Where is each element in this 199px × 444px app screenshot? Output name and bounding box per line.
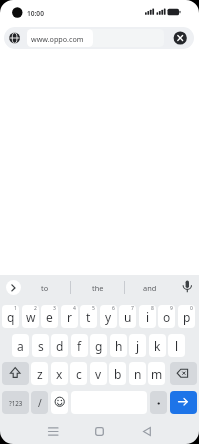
staticText: 5	[92, 305, 95, 312]
button[interactable]: j	[129, 334, 146, 357]
staticText: j	[136, 338, 140, 354]
staticText: n	[134, 366, 142, 382]
staticText: y	[105, 309, 112, 325]
staticText: b	[114, 366, 122, 382]
button[interactable]: v	[90, 362, 107, 385]
staticText: k	[154, 338, 161, 354]
button[interactable]: l	[168, 334, 185, 357]
staticText: u	[124, 309, 132, 325]
button[interactable]: m	[148, 362, 165, 385]
staticText: v	[95, 366, 102, 382]
staticText: t	[86, 309, 91, 325]
button[interactable]: to	[32, 279, 58, 296]
button[interactable]: p	[178, 305, 195, 328]
staticText: z	[37, 366, 43, 382]
button[interactable]: o	[158, 305, 175, 328]
button[interactable]: h	[110, 334, 127, 357]
button[interactable]: w	[22, 305, 39, 328]
button[interactable]: r	[61, 305, 78, 328]
staticText: 10:00	[27, 9, 44, 18]
staticText: m	[151, 366, 163, 382]
staticText: f	[77, 338, 82, 354]
button[interactable]: k	[149, 334, 166, 357]
staticText: d	[56, 338, 64, 354]
button[interactable]: e	[41, 305, 58, 328]
button[interactable]	[6, 280, 21, 295]
button[interactable]: the	[85, 279, 111, 296]
staticText: 8	[151, 305, 154, 312]
staticText: p	[183, 309, 191, 325]
staticText: 3	[53, 305, 56, 312]
button[interactable]	[4, 27, 194, 49]
staticText: r	[67, 309, 72, 325]
staticText: 4	[73, 305, 76, 312]
button[interactable]	[170, 391, 197, 414]
button[interactable]: y	[100, 305, 117, 328]
button[interactable]: a	[12, 334, 29, 357]
staticText: 0	[190, 305, 193, 312]
button[interactable]: q	[2, 305, 19, 328]
button[interactable]: ?123	[2, 391, 29, 414]
button[interactable]: x	[51, 362, 68, 385]
staticText: e	[46, 309, 53, 325]
button[interactable]: n	[129, 362, 146, 385]
button[interactable]: d	[51, 334, 68, 357]
staticText: the	[92, 283, 104, 293]
staticText: a	[17, 338, 24, 354]
staticText: 2	[34, 305, 37, 312]
staticText: l	[175, 338, 179, 354]
staticText: ?123	[9, 399, 23, 407]
staticText: q	[7, 309, 15, 325]
staticText: x	[56, 366, 63, 382]
button[interactable]	[2, 362, 29, 385]
button[interactable]: i	[139, 305, 156, 328]
staticText: w	[26, 309, 36, 325]
staticText: s	[38, 338, 44, 354]
staticText: www.oppo.com	[31, 34, 84, 44]
button[interactable]: s	[32, 334, 49, 357]
staticText: 6	[112, 305, 115, 312]
staticText: 1	[14, 305, 17, 312]
button[interactable]: and	[137, 279, 163, 296]
button[interactable]: t	[80, 305, 97, 328]
button[interactable]: u	[119, 305, 136, 328]
staticText: 7	[131, 305, 134, 312]
button[interactable]: f	[71, 334, 88, 357]
button[interactable]	[170, 362, 197, 385]
button[interactable]	[150, 391, 167, 414]
button[interactable]	[51, 391, 68, 414]
staticText: h	[115, 338, 123, 354]
button[interactable]: g	[90, 334, 107, 357]
staticText: c	[76, 366, 82, 382]
button[interactable]: /	[31, 391, 48, 414]
staticText: to	[41, 283, 49, 293]
staticText: i	[146, 309, 150, 325]
staticText: g	[95, 338, 103, 354]
staticText: 9	[170, 305, 173, 312]
button[interactable]: b	[109, 362, 126, 385]
staticText: /	[38, 396, 42, 410]
button[interactable]: c	[70, 362, 87, 385]
staticText: and	[143, 283, 157, 293]
staticText: o	[163, 309, 171, 325]
button[interactable]: z	[31, 362, 48, 385]
